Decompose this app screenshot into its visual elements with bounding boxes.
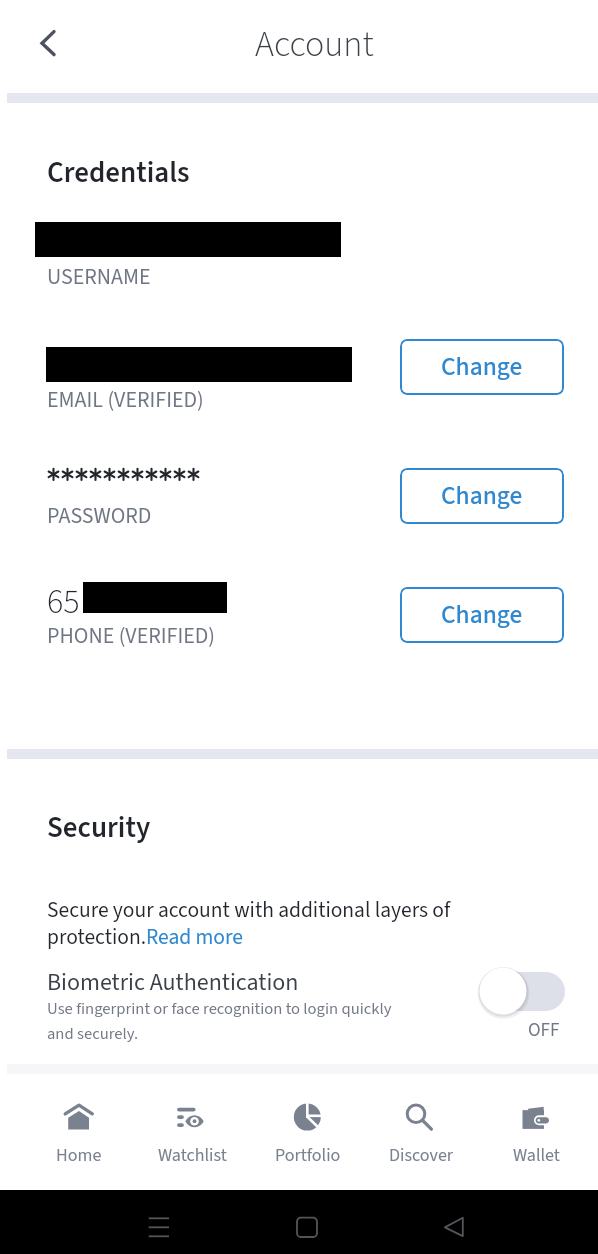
staticText: Watchlist (158, 1143, 227, 1169)
button[interactable]: Biometric authentication toggle, off (473, 960, 571, 1018)
staticText: Portfolio (275, 1143, 341, 1169)
button[interactable]: Watchlist (139, 1092, 245, 1166)
button[interactable]: Back (435, 1203, 483, 1251)
button[interactable]: Change (400, 587, 564, 643)
button[interactable]: Portfolio (255, 1092, 361, 1166)
staticText: Use fingerprint or face recognition to l… (47, 997, 407, 1046)
staticText: Home (56, 1143, 102, 1169)
staticText: Change (441, 349, 523, 385)
button[interactable]: Home (283, 1203, 331, 1251)
button[interactable]: Change (400, 339, 564, 395)
button[interactable]: Wallet (483, 1092, 589, 1166)
button[interactable]: Discover (368, 1092, 474, 1166)
staticText: Wallet (513, 1143, 560, 1169)
staticText: Secure your account with additional laye… (47, 895, 457, 953)
button[interactable]: Back (22, 19, 70, 67)
staticText: PASSWORD (47, 500, 152, 531)
button[interactable]: Home (26, 1092, 132, 1166)
button[interactable]: Recent apps (135, 1203, 183, 1251)
staticText: Security (47, 807, 151, 848)
button[interactable]: Change (400, 468, 564, 524)
staticText: Discover (389, 1143, 454, 1169)
staticText: EMAIL (VERIFIED) (47, 384, 204, 415)
staticText: Account (255, 19, 374, 70)
staticText: PHONE (VERIFIED) (47, 620, 215, 651)
staticText: OFF (528, 1017, 560, 1044)
staticText: 65 (47, 578, 80, 626)
staticText: Change (441, 478, 523, 514)
staticText: Credentials (47, 152, 190, 193)
staticText: Biometric Authentication (47, 965, 299, 999)
staticText: USERNAME (47, 261, 151, 292)
staticText: Change (441, 597, 523, 633)
